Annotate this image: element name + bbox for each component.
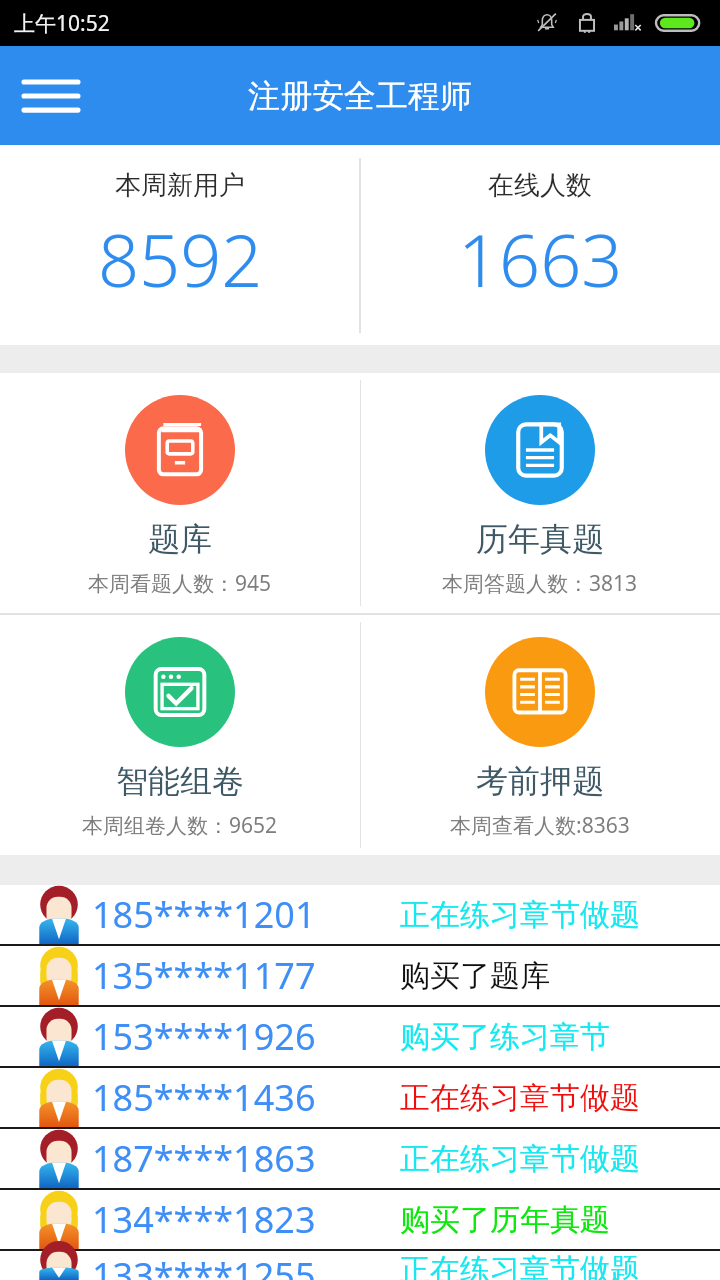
button[interactable]: 153****1926: [0, 1007, 720, 1066]
staticText: 本周组卷人数：9652: [82, 811, 278, 840]
button[interactable]: 135****1177: [0, 946, 720, 1005]
button[interactable]: 题库: [0, 373, 360, 613]
staticText: 在线人数: [488, 169, 592, 202]
button[interactable]: 185****1201: [0, 885, 720, 944]
staticText: 考前押题: [476, 761, 604, 801]
staticText: 1663: [458, 210, 623, 308]
staticText: 注册安全工程师: [248, 76, 472, 116]
staticText: 正在练习章节做题: [400, 1079, 640, 1117]
staticText: 购买了练习章节: [400, 1018, 610, 1056]
button[interactable]: Menu: [12, 61, 90, 131]
staticText: 185****1201: [92, 890, 316, 939]
button[interactable]: 历年真题: [360, 373, 720, 613]
staticText: 正在练习章节做题: [400, 896, 640, 934]
staticText: 本周看题人数：945: [88, 569, 272, 598]
staticText: 135****1177: [92, 951, 316, 1000]
staticText: 智能组卷: [116, 761, 244, 801]
button[interactable]: 智能组卷: [0, 615, 360, 855]
staticText: 本周新用户: [115, 169, 245, 202]
button[interactable]: 133****1255: [0, 1251, 720, 1280]
staticText: 185****1436: [92, 1073, 316, 1122]
button[interactable]: 考前押题: [360, 615, 720, 855]
button[interactable]: 在线人数: [360, 145, 720, 345]
button[interactable]: 187****1863: [0, 1129, 720, 1188]
button[interactable]: 本周新用户: [0, 145, 360, 345]
staticText: 正在练习章节做题: [400, 1251, 640, 1280]
staticText: 本周查看人数:8363: [450, 811, 630, 840]
staticText: 134****1823: [92, 1195, 316, 1244]
staticText: 购买了历年真题: [400, 1201, 610, 1239]
staticText: 正在练习章节做题: [400, 1140, 640, 1178]
button[interactable]: 134****1823: [0, 1190, 720, 1249]
button[interactable]: 185****1436: [0, 1068, 720, 1127]
staticText: 题库: [148, 519, 212, 559]
staticText: 153****1926: [92, 1012, 316, 1061]
staticText: 本周答题人数：3813: [442, 569, 638, 598]
staticText: 历年真题: [476, 519, 604, 559]
staticText: 187****1863: [92, 1134, 316, 1183]
staticText: 上午10:52: [14, 9, 110, 38]
staticText: 133****1255: [92, 1251, 316, 1280]
staticText: 8592: [98, 210, 263, 308]
staticText: 购买了题库: [400, 957, 550, 995]
